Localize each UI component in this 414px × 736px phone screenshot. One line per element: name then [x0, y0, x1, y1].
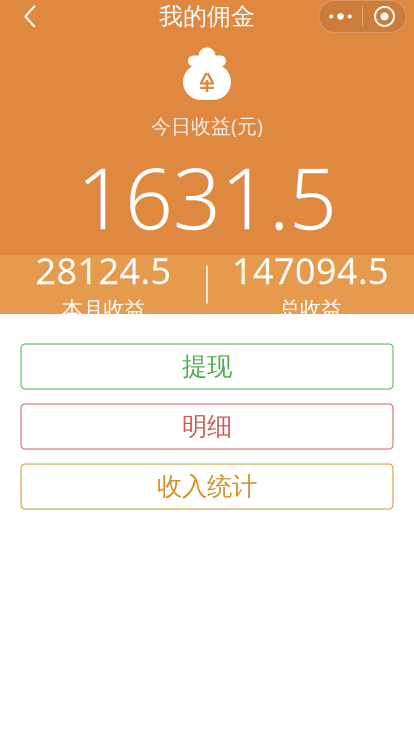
button[interactable]: 提现	[21, 344, 393, 389]
staticText: 28124.5	[35, 246, 171, 294]
staticText: 今日收益(元)	[151, 112, 263, 139]
staticText: 账户余额 **** 元	[103, 254, 278, 285]
staticText: 明细	[182, 411, 232, 442]
staticText: 提现	[182, 351, 232, 382]
staticText: 总收益	[279, 296, 342, 322]
staticText: 147094.5	[232, 246, 389, 294]
button[interactable]: 账户余额 **** 元	[97, 255, 316, 285]
button[interactable]: 返回	[8, 0, 52, 38]
staticText: 收入统计	[157, 471, 257, 502]
staticText: 1631.5	[77, 141, 337, 252]
staticText: 我的佣金	[159, 2, 255, 31]
staticText: 本月收益	[61, 296, 145, 322]
button[interactable]: 更多	[319, 0, 362, 32]
button[interactable]: 明细	[21, 404, 393, 449]
button[interactable]: 收入统计	[21, 464, 393, 509]
button[interactable]: 关闭	[363, 0, 406, 32]
